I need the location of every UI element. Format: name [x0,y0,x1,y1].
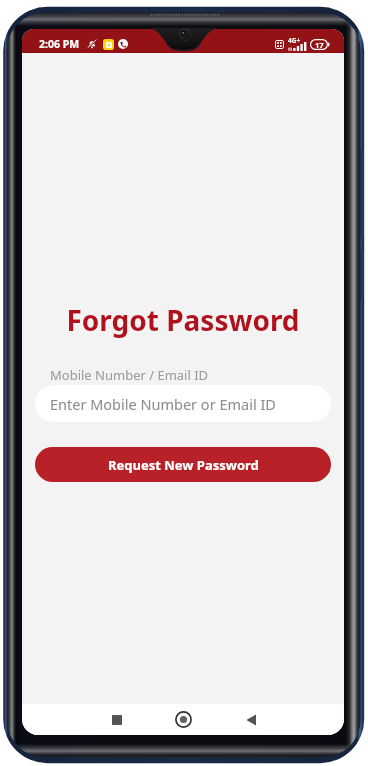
staticText: Request New Password [108,456,259,474]
staticText: 17 [315,40,324,50]
staticText: 2:06 PM [39,37,80,51]
staticText: Mobile Number / Email ID [50,366,209,384]
button[interactable]: Recent apps [100,704,133,735]
staticText: Enter Mobile Number or Email ID [50,394,276,414]
button[interactable]: Request New Password [35,447,331,482]
staticText: Forgot Password [22,301,344,339]
staticText: 4G+ [288,36,301,45]
button[interactable]: Back [234,704,267,735]
button[interactable]: Enter Mobile Number or Email ID [35,385,331,422]
button[interactable]: Home [167,704,200,735]
